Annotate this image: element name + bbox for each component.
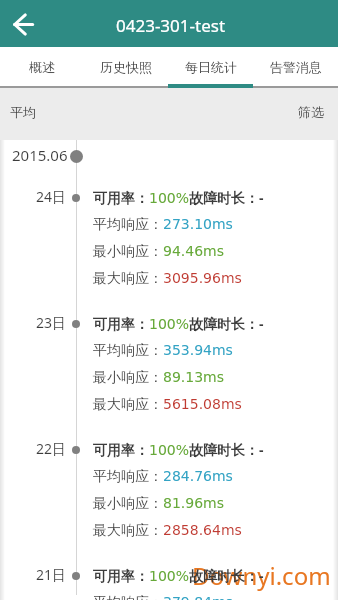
staticText: 可用率：100%故障时长：- xyxy=(93,314,264,333)
button[interactable]: 24日 xyxy=(0,184,338,310)
staticText: 可用率：100%故障时长：- xyxy=(93,188,264,207)
staticText: 每日统计 xyxy=(185,59,237,75)
staticText: 最大响应：2858.64ms xyxy=(93,522,242,540)
staticText: 概述 xyxy=(29,59,55,75)
staticText: 平均响应：353.94ms xyxy=(93,342,233,360)
staticText: 筛选 xyxy=(298,104,324,120)
staticText: 23日 xyxy=(36,313,67,332)
button[interactable]: 21日 xyxy=(0,562,338,600)
button[interactable]: 23日 xyxy=(0,310,338,436)
staticText: 平均响应：273.10ms xyxy=(93,216,233,234)
staticText: 最大响应：3095.96ms xyxy=(93,270,242,288)
staticText: 最小响应：81.96ms xyxy=(93,495,225,513)
staticText: 平均响应：379.84ms xyxy=(93,594,233,600)
staticText: 22日 xyxy=(36,439,67,458)
staticText: 0423-301-test xyxy=(116,14,226,37)
staticText: Downyi.com xyxy=(192,559,331,592)
staticText: 历史快照 xyxy=(100,59,152,75)
staticText: 21日 xyxy=(36,565,67,584)
button[interactable]: 概述 xyxy=(0,47,84,88)
staticText: 可用率：100%故障时长：- xyxy=(93,440,264,459)
button[interactable]: 每日统计 xyxy=(168,47,253,88)
staticText: 平均响应：284.76ms xyxy=(93,468,233,486)
button[interactable]: 历史快照 xyxy=(84,47,168,88)
staticText: 可用率：100%故障时长：- xyxy=(93,566,264,585)
button[interactable]: 告警消息 xyxy=(253,47,338,88)
staticText: 24日 xyxy=(36,187,67,206)
staticText: 最小响应：89.13ms xyxy=(93,369,225,387)
staticText: 2015.06 xyxy=(12,145,68,165)
button[interactable]: Back xyxy=(0,0,47,47)
button[interactable]: 22日 xyxy=(0,436,338,562)
staticText: 最小响应：94.46ms xyxy=(93,243,225,261)
staticText: 告警消息 xyxy=(270,59,322,75)
staticText: 最大响应：5615.08ms xyxy=(93,396,242,414)
staticText: 平均 xyxy=(10,104,36,120)
button[interactable]: 筛选 xyxy=(278,88,338,128)
